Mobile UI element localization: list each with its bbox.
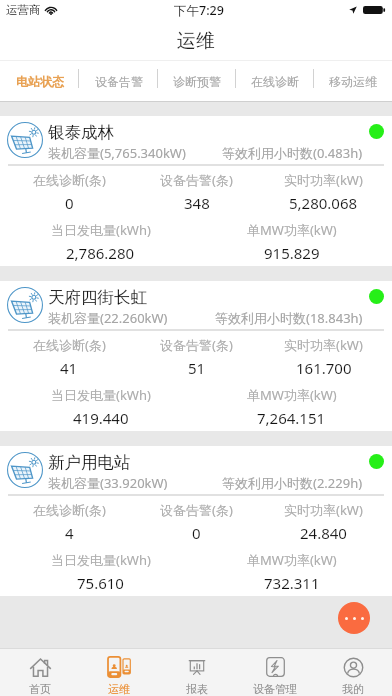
staticText: 161.700 [296, 358, 352, 378]
staticText: 5,280.068 [289, 193, 358, 213]
staticText: 实时功率(kW) [284, 336, 363, 354]
staticText: 等效利用小时数(18.843h) [215, 309, 363, 327]
button[interactable]: 诊断预警 [158, 61, 236, 101]
button[interactable]: More actions [338, 602, 370, 634]
button[interactable]: 设备管理 [236, 648, 314, 696]
button[interactable]: 新户用电站 [0, 446, 392, 596]
button[interactable]: 首页 [0, 648, 79, 696]
staticText: 运维 [177, 29, 215, 53]
staticText: 电站状态 [16, 74, 64, 89]
staticText: 51 [188, 358, 206, 378]
staticText: 实时功率(kW) [284, 501, 363, 519]
staticText: 24.840 [300, 523, 347, 543]
button[interactable]: 我的 [314, 648, 392, 696]
staticText: 设备告警(条) [160, 171, 233, 189]
button[interactable]: 在线诊断 [236, 61, 314, 101]
staticText: 在线诊断(条) [33, 501, 106, 519]
staticText: 当日发电量(kWh) [51, 386, 151, 404]
staticText: 设备告警(条) [160, 336, 233, 354]
staticText: 单MW功率(kW) [247, 386, 337, 404]
staticText: 2,786.280 [66, 243, 135, 263]
staticText: 装机容量(22.260kW) [48, 309, 168, 327]
button[interactable]: 报表 [158, 648, 236, 696]
staticText: 银泰成林 [48, 122, 114, 143]
button[interactable]: 电站状态 [0, 61, 79, 101]
staticText: 当日发电量(kWh) [51, 221, 151, 239]
button[interactable]: 运维 [79, 648, 158, 696]
staticText: 单MW功率(kW) [247, 551, 337, 569]
staticText: 运营商 [6, 3, 41, 17]
staticText: 等效利用小时数(0.483h) [222, 144, 363, 162]
staticText: 419.440 [73, 408, 129, 428]
staticText: 移动运维 [329, 74, 377, 89]
staticText: 等效利用小时数(2.229h) [222, 474, 363, 492]
staticText: 诊断预警 [173, 74, 221, 89]
staticText: 单MW功率(kW) [247, 221, 337, 239]
staticText: 915.829 [264, 243, 320, 263]
staticText: 我的 [342, 682, 364, 696]
button[interactable]: 移动运维 [314, 61, 392, 101]
button[interactable]: 银泰成林 [0, 116, 392, 266]
staticText: 下午7:29 [174, 2, 224, 19]
staticText: 报表 [186, 682, 208, 696]
staticText: 装机容量(33.920kW) [48, 474, 168, 492]
staticText: 348 [184, 193, 210, 213]
staticText: 设备管理 [253, 682, 297, 696]
staticText: 新户用电站 [48, 452, 131, 473]
staticText: 在线诊断 [251, 74, 299, 89]
staticText: 732.311 [264, 573, 320, 593]
staticText: 4 [65, 523, 74, 543]
staticText: 41 [60, 358, 78, 378]
staticText: 7,264.151 [257, 408, 326, 428]
staticText: 0 [192, 523, 201, 543]
staticText: 75.610 [77, 573, 124, 593]
staticText: 在线诊断(条) [33, 336, 106, 354]
staticText: 运维 [108, 682, 130, 696]
staticText: 0 [65, 193, 74, 213]
staticText: 装机容量(5,765.340kW) [48, 144, 186, 162]
staticText: 首页 [29, 682, 51, 696]
staticText: 设备告警(条) [160, 501, 233, 519]
staticText: 当日发电量(kWh) [51, 551, 151, 569]
button[interactable]: 天府四街长虹 [0, 281, 392, 431]
staticText: 设备告警 [95, 74, 143, 89]
staticText: 天府四街长虹 [48, 287, 147, 308]
button[interactable]: 设备告警 [79, 61, 158, 101]
staticText: 在线诊断(条) [33, 171, 106, 189]
staticText: 实时功率(kW) [284, 171, 363, 189]
